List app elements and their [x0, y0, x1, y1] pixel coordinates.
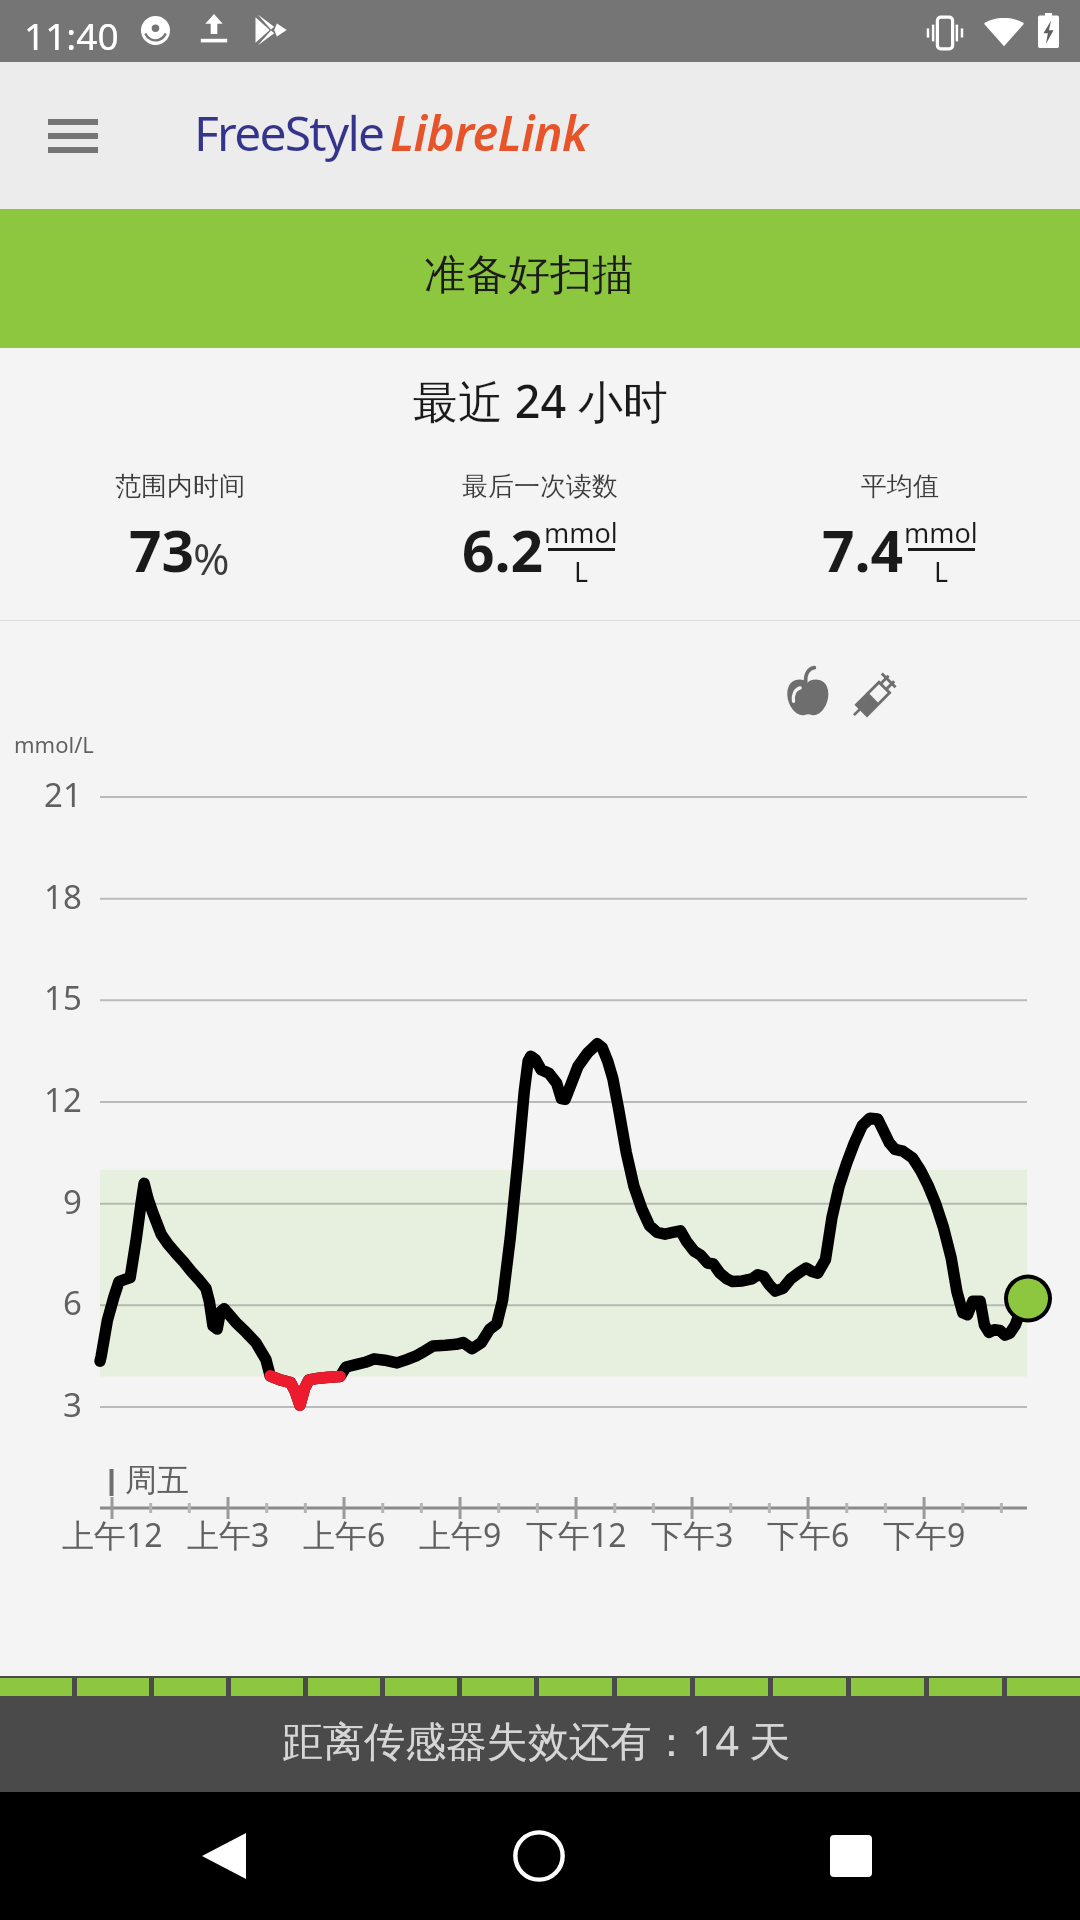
staticText: 上午3 — [187, 1513, 270, 1557]
staticText: mmol — [904, 514, 978, 551]
staticText: 21 — [44, 772, 82, 817]
staticText: 上午9 — [419, 1513, 502, 1557]
staticText: 最近 24 小时 — [413, 370, 668, 431]
staticText: L — [574, 553, 589, 590]
staticText: 周五 — [125, 1460, 189, 1500]
staticText: 9 — [63, 1179, 82, 1224]
staticText: 12 — [44, 1077, 82, 1122]
staticText: 上午12 — [62, 1513, 163, 1557]
staticText: LibreLink — [390, 100, 588, 165]
staticText: 18 — [44, 874, 82, 919]
staticText: 6 — [63, 1280, 82, 1325]
staticText: 范围内时间 — [115, 470, 245, 503]
button[interactable]: Insulin — [853, 671, 899, 717]
button[interactable]: 平均值 — [720, 470, 1080, 589]
staticText: L — [934, 553, 949, 590]
staticText: 下午9 — [883, 1513, 966, 1557]
button[interactable]: Home — [459, 1792, 619, 1920]
staticText: 距离传感器失效还有：14 天 — [282, 1712, 791, 1768]
staticText: 11:40 — [24, 10, 119, 60]
staticText: 6.2 — [462, 511, 544, 589]
staticText: 下午6 — [767, 1513, 850, 1557]
staticText: 最后一次读数 — [462, 470, 618, 503]
staticText: 平均值 — [861, 470, 939, 503]
staticText: mmol/L — [14, 729, 94, 759]
staticText: 3 — [63, 1382, 82, 1427]
button[interactable]: Menu — [25, 88, 121, 184]
button[interactable]: 范围内时间 — [0, 470, 360, 589]
button[interactable]: 最后一次读数 — [360, 470, 720, 589]
button[interactable]: Back — [144, 1792, 304, 1920]
button[interactable]: Food — [786, 665, 829, 717]
staticText: mmol — [544, 514, 618, 551]
staticText: 上午6 — [303, 1513, 386, 1557]
staticText: 下午3 — [651, 1513, 734, 1557]
staticText: FreeStyle — [194, 100, 384, 165]
staticText: 15 — [44, 975, 82, 1020]
button[interactable]: 距离传感器失效还有：14 天 — [0, 1676, 1080, 1792]
staticText: 准备好扫描 — [424, 249, 634, 302]
button[interactable]: Recents — [771, 1792, 931, 1920]
staticText: 73 — [129, 511, 195, 589]
staticText: % — [193, 528, 230, 588]
staticText: 下午12 — [526, 1513, 627, 1557]
button[interactable]: 准备好扫描 — [0, 209, 1080, 348]
staticText: 7.4 — [822, 511, 904, 589]
